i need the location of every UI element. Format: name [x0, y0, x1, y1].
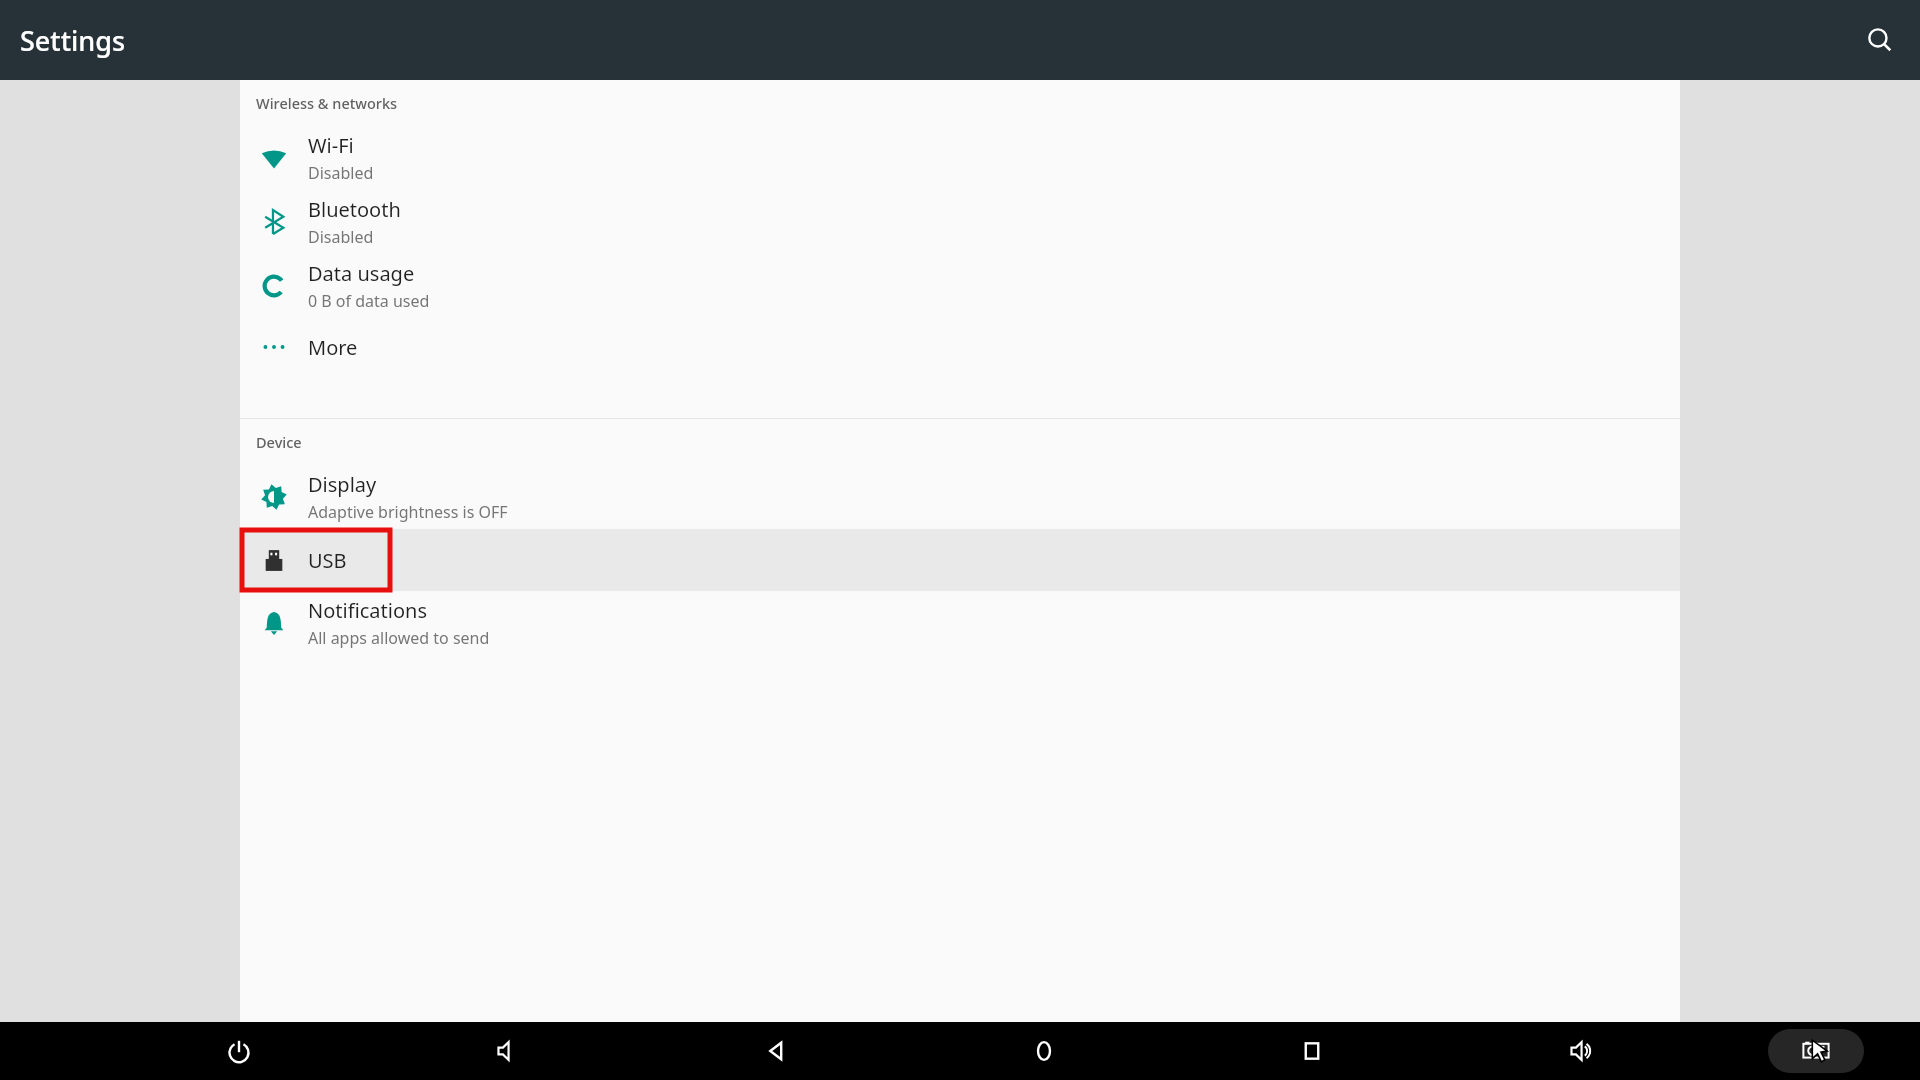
button[interactable]: Search: [1852, 12, 1908, 68]
button[interactable]: Power: [210, 1022, 268, 1080]
staticText: All apps allowed to send: [308, 627, 490, 649]
staticText: Wireless & networks: [256, 93, 398, 113]
staticText: Data usage: [308, 260, 415, 287]
staticText: Bluetooth: [308, 196, 401, 223]
button[interactable]: Volume up: [1552, 1022, 1610, 1080]
staticText: Notifications: [308, 597, 427, 624]
staticText: USB: [308, 547, 347, 574]
staticText: Disabled: [308, 162, 374, 184]
staticText: More: [308, 334, 358, 361]
button[interactable]: Home: [1015, 1022, 1073, 1080]
staticText: Wi-Fi: [308, 132, 354, 159]
staticText: 0 B of data used: [308, 290, 430, 312]
button[interactable]: Data usage: [240, 254, 1680, 318]
button[interactable]: More: [240, 318, 1680, 376]
staticText: Adaptive brightness is OFF: [308, 501, 508, 523]
staticText: Device: [256, 432, 302, 452]
staticText: Disabled: [308, 226, 374, 248]
button[interactable]: Wi-Fi: [240, 126, 1680, 190]
button[interactable]: Notifications: [240, 591, 1680, 655]
button[interactable]: Recents: [1283, 1022, 1341, 1080]
button[interactable]: Back: [747, 1022, 805, 1080]
button[interactable]: Volume down: [479, 1022, 537, 1080]
button[interactable]: Display: [240, 465, 1680, 529]
staticText: Display: [308, 471, 377, 498]
button[interactable]: Bluetooth: [240, 190, 1680, 254]
button[interactable]: Screenshot: [1768, 1029, 1864, 1073]
button[interactable]: USB: [240, 529, 1680, 591]
staticText: Settings: [20, 22, 126, 59]
